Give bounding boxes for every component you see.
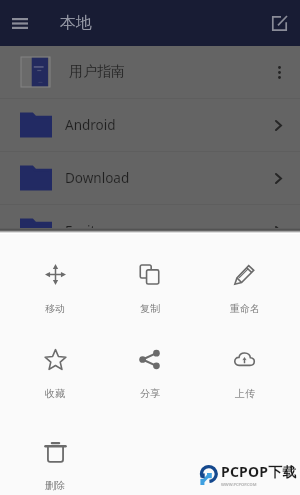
staticText: 删除 [45,479,65,492]
staticText: 移动 [45,302,65,315]
button[interactable]: 上传 [197,349,292,400]
staticText: Download [65,169,130,187]
button[interactable]: 删除 [8,441,102,492]
staticText: 复制 [140,302,160,315]
button[interactable]: 复制 [102,264,197,315]
button[interactable]: 重命名 [197,264,292,315]
button[interactable]: Download [0,152,300,204]
button[interactable]: More options [266,59,292,85]
button[interactable]: 移动 [8,264,102,315]
staticText: WWW.PCPOP.COM [221,482,257,487]
button[interactable]: Foxit [0,205,300,257]
staticText: 重命名 [230,302,260,315]
button[interactable]: 分享 [102,349,197,400]
button[interactable]: Menu [3,7,36,40]
staticText: 分享 [140,387,160,400]
staticText: 上传 [235,387,255,400]
staticText: 本地 [60,13,92,33]
staticText: 用户指南 [69,63,125,81]
button[interactable]: 收藏 [8,349,102,400]
staticText: Android [65,116,116,134]
button[interactable]: Edit [263,7,296,40]
staticText: Foxit [65,222,96,240]
button[interactable]: 用户指南 [0,46,300,98]
button[interactable]: Android [0,99,300,151]
staticText: PCPOP下载 [221,462,297,481]
staticText: 收藏 [45,387,65,400]
